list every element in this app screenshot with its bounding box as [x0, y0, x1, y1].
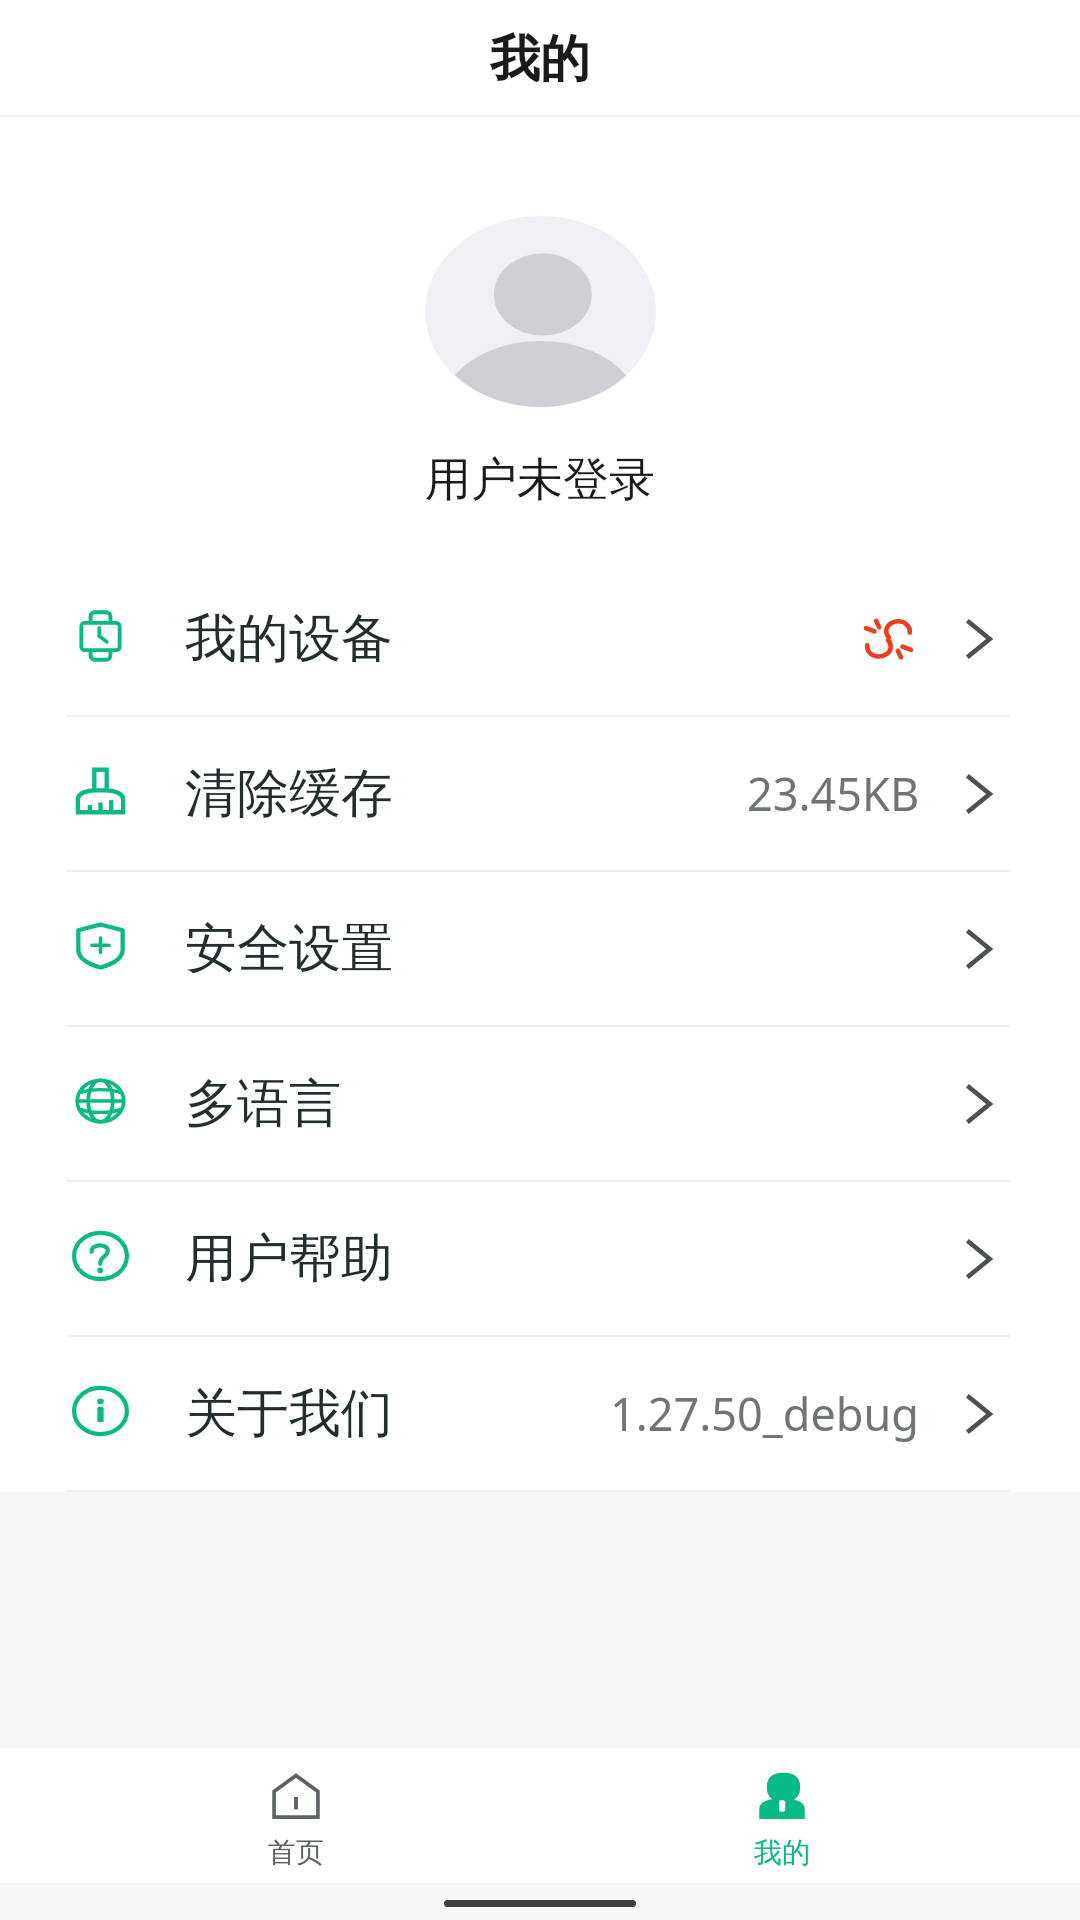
button[interactable]: 我的 — [710, 1748, 853, 1883]
other: Disconnected — [862, 616, 915, 662]
button[interactable]: 清除缓存 — [0, 717, 1080, 870]
staticText: 关于我们 — [185, 1381, 393, 1447]
staticText: 我的 — [490, 28, 590, 91]
staticText: 首页 — [268, 1835, 324, 1870]
staticText: 23.45KB — [747, 763, 920, 824]
button[interactable]: 头像 — [0, 117, 1080, 562]
staticText: 1.27.50_debug — [610, 1383, 920, 1444]
button[interactable]: 用户帮助 — [0, 1182, 1080, 1335]
button[interactable]: 多语言 — [0, 1027, 1080, 1180]
button[interactable]: 安全设置 — [0, 872, 1080, 1025]
staticText: 我的 — [754, 1835, 810, 1870]
staticText: 我的设备 — [185, 606, 393, 672]
staticText: 清除缓存 — [185, 761, 393, 827]
button[interactable]: 首页 — [224, 1748, 367, 1883]
staticText: 多语言 — [185, 1071, 341, 1137]
button[interactable]: 关于我们 — [0, 1337, 1080, 1490]
staticText: 用户帮助 — [185, 1226, 393, 1292]
button[interactable]: 我的设备 — [0, 562, 1080, 715]
other: 头像 — [425, 216, 656, 407]
staticText: 用户未登录 — [425, 451, 655, 509]
staticText: 安全设置 — [185, 916, 393, 982]
